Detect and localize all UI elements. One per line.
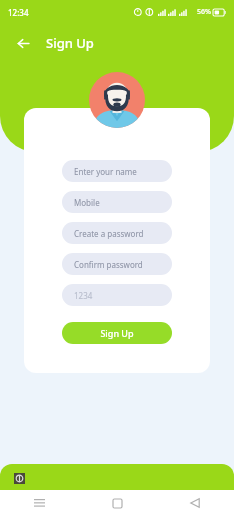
staticText: 1234 bbox=[74, 290, 93, 301]
staticText: Create a password bbox=[74, 228, 144, 239]
staticText: Mobile bbox=[74, 197, 100, 208]
staticText: 12:34 bbox=[8, 7, 29, 18]
button[interactable]: Back bbox=[10, 30, 36, 56]
button[interactable]: Back bbox=[156, 490, 234, 516]
button[interactable]: 1234 bbox=[62, 284, 172, 306]
button[interactable]: Enter your name bbox=[62, 160, 172, 182]
button[interactable]: Sign Up bbox=[62, 322, 172, 344]
button[interactable]: Confirm password bbox=[62, 253, 172, 275]
button[interactable]: Profile photo bbox=[89, 72, 145, 128]
button[interactable]: Mobile bbox=[62, 191, 172, 213]
button[interactable]: Create a password bbox=[62, 222, 172, 244]
button[interactable]: Home bbox=[78, 490, 156, 516]
staticText: Sign Up bbox=[100, 327, 134, 339]
staticText: 56% bbox=[197, 7, 211, 17]
button[interactable]: Recent apps bbox=[0, 490, 78, 516]
staticText: Enter your name bbox=[74, 166, 137, 177]
staticText: Sign Up bbox=[46, 34, 94, 52]
staticText: Confirm password bbox=[74, 259, 143, 270]
